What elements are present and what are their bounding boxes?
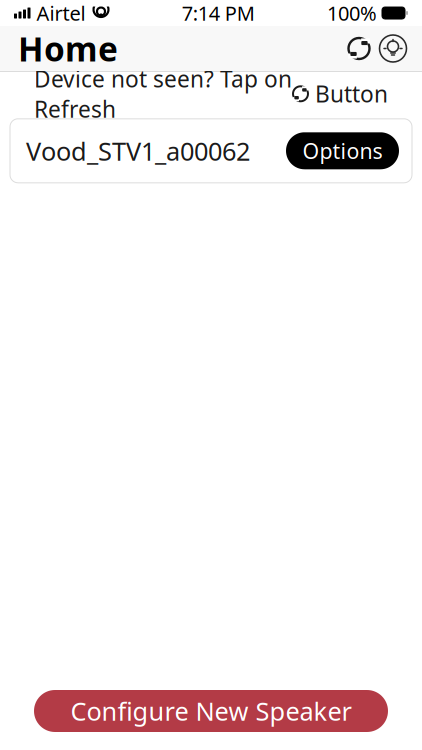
staticText: Vood_STV1_a00062	[26, 134, 250, 168]
staticText: Options	[302, 137, 382, 165]
staticText: Home	[18, 26, 118, 71]
button[interactable]: Tips	[376, 28, 410, 68]
staticText: 100%	[327, 0, 377, 26]
button[interactable]: Refresh	[342, 28, 376, 68]
staticText: Device not seen? Tap on Refresh	[34, 64, 292, 124]
staticText: Configure New Speaker	[70, 694, 351, 728]
button[interactable]: Options	[286, 132, 399, 169]
button[interactable]: Configure New Speaker	[34, 690, 388, 732]
staticText: Airtel	[36, 0, 85, 26]
staticText: Button	[309, 79, 388, 109]
button[interactable]: Vood_STV1_a00062	[10, 119, 412, 183]
staticText: 7:14 PM	[182, 0, 255, 26]
